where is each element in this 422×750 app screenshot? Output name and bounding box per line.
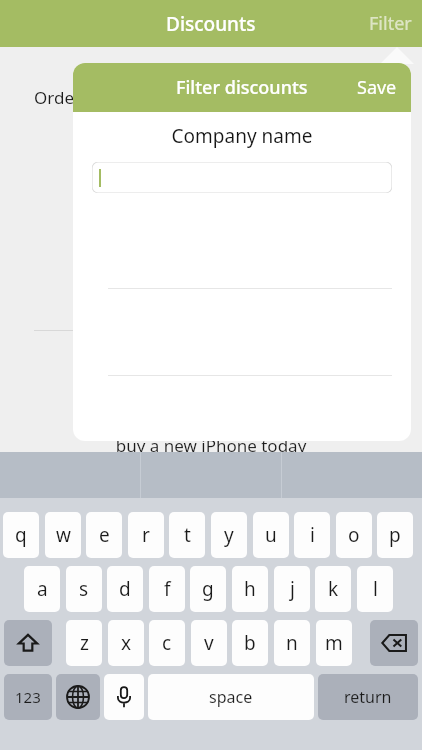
button[interactable]: Shift (4, 620, 52, 666)
button[interactable]: q (3, 512, 39, 558)
staticText: e (99, 522, 110, 548)
staticText: t (184, 522, 191, 548)
staticText: s (79, 576, 89, 602)
staticText: Company name (73, 123, 411, 149)
staticText: h (244, 576, 256, 602)
staticText: b (244, 630, 256, 656)
staticText: p (389, 522, 401, 548)
button[interactable]: f (149, 566, 185, 612)
staticText: space (209, 686, 253, 708)
button[interactable]: y (211, 512, 247, 558)
button[interactable]: space (148, 674, 314, 720)
staticText: k (328, 576, 339, 602)
button[interactable]: r (128, 512, 164, 558)
button[interactable]: g (190, 566, 226, 612)
button[interactable]: v (191, 620, 227, 666)
staticText: buy a new iPhone today (0, 434, 422, 457)
staticText: Save (357, 75, 397, 100)
staticText: return (344, 686, 392, 708)
staticText: a (37, 576, 48, 602)
staticText: f (164, 576, 171, 602)
staticText: o (348, 522, 360, 548)
button[interactable]: return (318, 674, 418, 720)
button[interactable]: k (315, 566, 351, 612)
staticText: m (325, 630, 343, 656)
staticText: q (15, 522, 27, 548)
button[interactable]: j (274, 566, 310, 612)
button[interactable]: e (86, 512, 122, 558)
button[interactable]: a (24, 566, 60, 612)
staticText: d (119, 576, 131, 602)
button[interactable]: s (66, 566, 102, 612)
button[interactable]: d (107, 566, 143, 612)
button[interactable]: Backspace (370, 620, 418, 666)
button[interactable]: Filter (369, 11, 412, 36)
button[interactable]: c (149, 620, 185, 666)
button[interactable]: o (336, 512, 372, 558)
staticText: j (290, 576, 295, 602)
staticText: i (310, 522, 315, 548)
button[interactable]: n (274, 620, 310, 666)
staticText: l (373, 576, 378, 602)
button[interactable]: l (357, 566, 393, 612)
staticText: Order your discount now and (34, 86, 269, 109)
staticText: c (162, 630, 172, 656)
staticText: g (202, 576, 214, 602)
staticText: y (224, 522, 234, 548)
staticText: n (286, 630, 298, 656)
staticText: z (80, 630, 89, 656)
staticText: Filter (369, 11, 412, 36)
staticText: u (265, 522, 277, 548)
button[interactable]: 123 (4, 674, 52, 720)
button[interactable]: m (316, 620, 352, 666)
button[interactable]: z (66, 620, 102, 666)
button[interactable]: u (253, 512, 289, 558)
staticText: w (56, 522, 71, 548)
staticText: x (121, 630, 132, 656)
staticText: r (142, 522, 150, 548)
staticText: v (204, 630, 214, 656)
staticText: Discounts (166, 11, 256, 37)
button[interactable]: Switch keyboard (56, 674, 100, 720)
button[interactable]: b (232, 620, 268, 666)
staticText: Filter discounts (176, 75, 308, 100)
button[interactable]: t (169, 512, 205, 558)
button[interactable]: Save (357, 75, 397, 100)
button[interactable]: Dictation (104, 674, 144, 720)
button[interactable]: x (108, 620, 144, 666)
button[interactable] (92, 162, 392, 193)
button[interactable]: p (377, 512, 413, 558)
button[interactable]: w (45, 512, 81, 558)
button[interactable]: i (294, 512, 330, 558)
button[interactable]: h (232, 566, 268, 612)
staticText: 123 (15, 687, 41, 707)
